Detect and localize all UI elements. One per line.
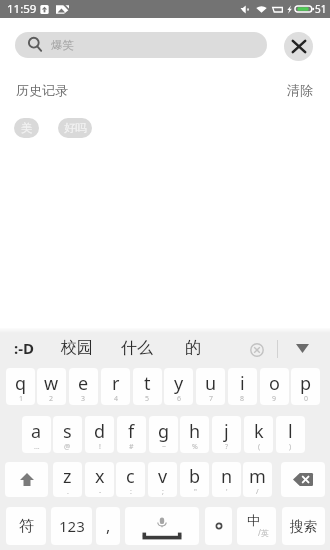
button[interactable]: j [212, 416, 241, 453]
staticText: q [15, 371, 27, 396]
staticText: # [129, 442, 134, 452]
staticText: u [205, 371, 217, 396]
staticText: a [31, 419, 42, 444]
staticText: % [192, 442, 198, 452]
button[interactable]: z [53, 462, 82, 497]
staticText: f [128, 419, 135, 444]
staticText: m [249, 464, 266, 489]
staticText: , [106, 515, 111, 537]
button[interactable]: n [212, 462, 241, 497]
button[interactable]: t [133, 368, 162, 405]
staticText: k [254, 419, 264, 444]
staticText: 9 [272, 394, 277, 404]
button[interactable]: 123 [51, 507, 92, 545]
button[interactable]: 符 [6, 507, 46, 545]
button[interactable]: 中 [237, 507, 276, 545]
button[interactable]: k [244, 416, 273, 453]
staticText: i [240, 371, 245, 396]
button[interactable]: x [85, 462, 114, 497]
staticText: 51 [315, 2, 327, 16]
button[interactable]: u [196, 368, 225, 405]
button[interactable]: y [164, 368, 193, 405]
button[interactable]: g [149, 416, 178, 453]
button[interactable]: Hide keyboard [291, 337, 313, 359]
button[interactable]: d [85, 416, 114, 453]
button[interactable]: 校园 [61, 338, 93, 358]
button[interactable]: s [53, 416, 82, 453]
button[interactable]: Shift [5, 462, 48, 497]
button[interactable]: f [117, 416, 146, 453]
button[interactable]: e [69, 368, 98, 405]
staticText: w [44, 371, 59, 396]
staticText: ! [99, 442, 101, 452]
staticText: e [78, 371, 89, 396]
button[interactable]: w [37, 368, 66, 405]
staticText: 6 [177, 394, 182, 404]
staticText: l [288, 419, 293, 444]
staticText: ( [258, 442, 261, 452]
button[interactable]: p [291, 368, 320, 405]
button[interactable]: 爆笑 [15, 32, 267, 58]
button[interactable]: 美 [14, 118, 39, 138]
staticText: " [194, 487, 197, 497]
staticText: ? [225, 442, 229, 452]
button[interactable]: 的 [185, 338, 201, 358]
staticText: 好吗 [64, 121, 87, 135]
staticText: x [95, 464, 105, 489]
staticText: 7 [209, 394, 214, 404]
button[interactable]: r [101, 368, 130, 405]
button[interactable]: o [260, 368, 289, 405]
button[interactable]: :-D [14, 338, 34, 358]
staticText: s [63, 419, 72, 444]
staticText: 什么 [121, 338, 153, 358]
button[interactable]: b [180, 462, 209, 497]
staticText: 爆笑 [51, 38, 74, 52]
button[interactable]: c [116, 462, 145, 497]
staticText: ~ [162, 442, 167, 452]
staticText: 中 [247, 512, 260, 528]
staticText: :-D [14, 338, 34, 358]
staticText: y [174, 371, 184, 396]
staticText: p [300, 371, 312, 396]
button[interactable]: l [276, 416, 305, 453]
button[interactable]: h [180, 416, 209, 453]
staticText: 4 [114, 394, 119, 404]
button[interactable]: 什么 [121, 338, 153, 358]
staticText: b [189, 464, 201, 489]
staticText: n [221, 464, 233, 489]
staticText: 123 [59, 516, 85, 536]
staticText: o [269, 371, 280, 396]
staticText: - [99, 487, 102, 497]
button[interactable]: 好吗 [58, 118, 92, 138]
button[interactable]: Clear input [246, 339, 268, 361]
staticText: 美 [21, 121, 33, 135]
button[interactable]: q [6, 368, 35, 405]
staticText: z [63, 464, 72, 489]
staticText: : [130, 487, 132, 497]
staticText: d [94, 419, 106, 444]
staticText: ' [226, 487, 228, 497]
button[interactable]: m [243, 462, 272, 497]
button[interactable]: Period [205, 507, 232, 545]
staticText: 1 [19, 394, 24, 404]
staticText: t [144, 371, 151, 396]
button[interactable]: a [22, 416, 51, 453]
staticText: 2 [49, 394, 54, 404]
button[interactable]: 历史记录 [16, 82, 68, 98]
button[interactable]: , [96, 507, 120, 545]
staticText: 历史记录 [16, 82, 68, 98]
button[interactable]: 清除 [287, 82, 313, 98]
button[interactable]: i [228, 368, 257, 405]
staticText: 8 [240, 394, 245, 404]
staticText: 搜索 [290, 518, 317, 535]
button[interactable]: Clear search [284, 32, 313, 61]
staticText: . [67, 487, 69, 497]
button[interactable]: Space [125, 507, 199, 545]
staticText: c [126, 464, 135, 489]
button[interactable]: Backspace [281, 462, 325, 497]
staticText: v [158, 464, 168, 489]
button[interactable]: 搜索 [282, 507, 325, 545]
staticText: g [158, 419, 170, 444]
staticText: ; [162, 487, 164, 497]
button[interactable]: v [148, 462, 177, 497]
